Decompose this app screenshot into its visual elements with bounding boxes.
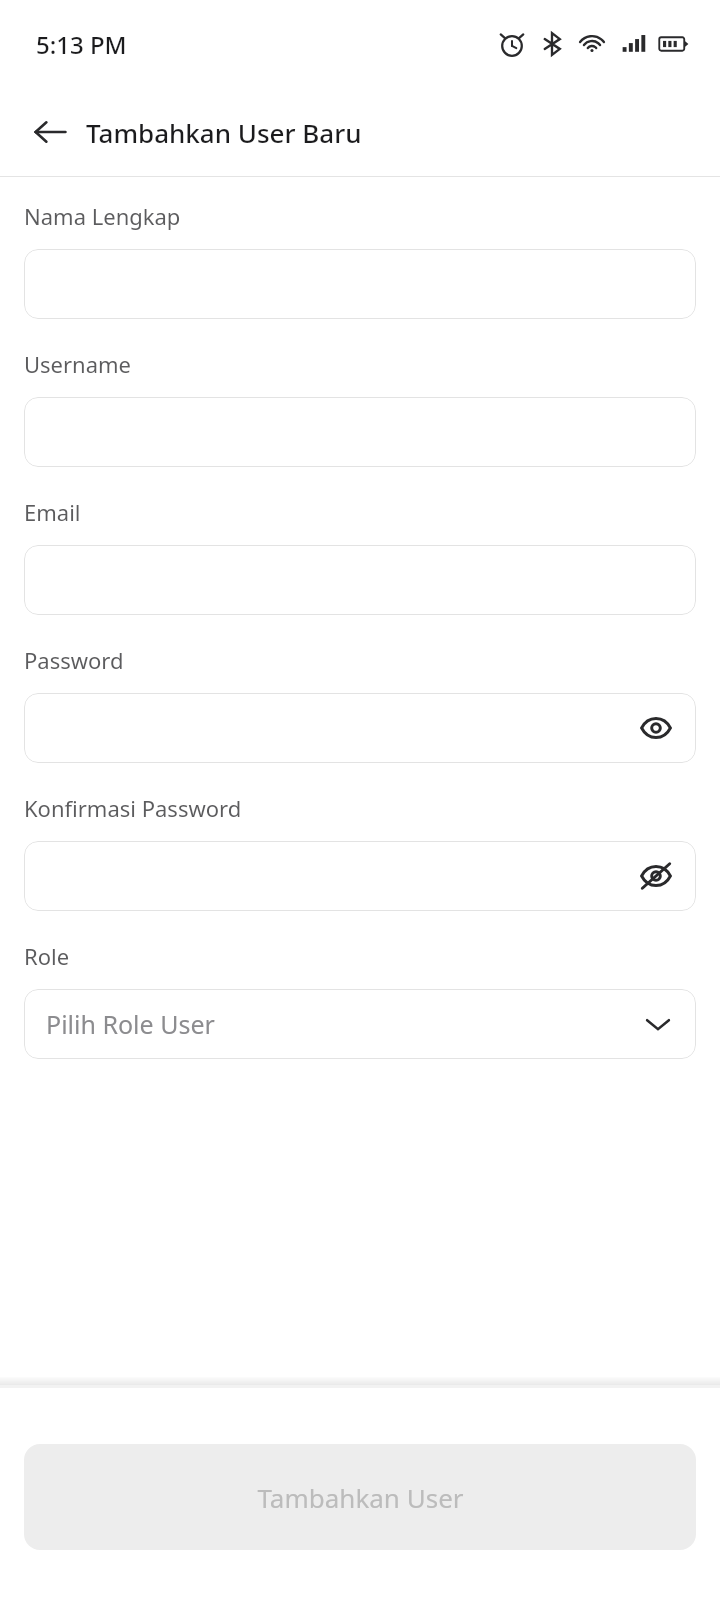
button[interactable]: Show password — [24, 693, 696, 763]
button[interactable]: Show password — [634, 706, 678, 750]
staticText: 5:13 PM — [36, 28, 127, 61]
staticText: Tambahkan User — [257, 1480, 464, 1515]
staticText: Tambahkan User Baru — [86, 115, 362, 150]
button[interactable] — [24, 545, 696, 615]
button[interactable]: Back — [22, 104, 78, 160]
staticText: Pilih Role User — [46, 1007, 215, 1041]
staticText: Role — [24, 941, 70, 971]
button[interactable] — [24, 249, 696, 319]
staticText: Nama Lengkap — [24, 201, 181, 231]
staticText: Username — [24, 349, 132, 379]
button[interactable]: Hide password — [634, 854, 678, 898]
staticText: Email — [24, 497, 81, 527]
staticText: Konfirmasi Password — [24, 793, 242, 823]
staticText: Password — [24, 645, 124, 675]
button[interactable]: Pilih Role User — [24, 989, 696, 1059]
button[interactable]: Tambahkan User — [24, 1444, 696, 1550]
button[interactable]: Hide password — [24, 841, 696, 911]
button[interactable] — [24, 397, 696, 467]
